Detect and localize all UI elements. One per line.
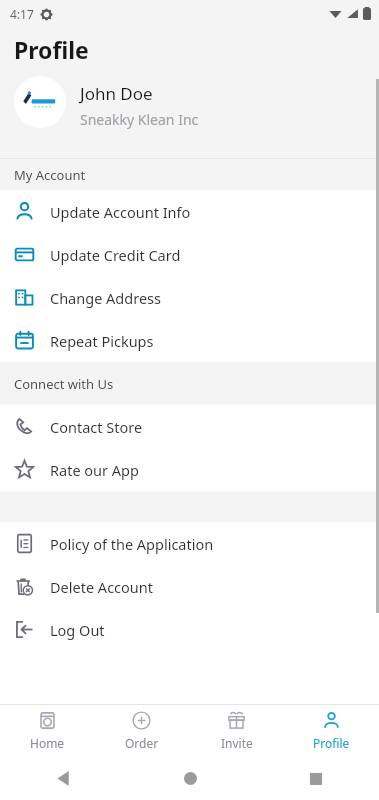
button[interactable]: Invite (189, 705, 284, 757)
button[interactable]: Recents (253, 773, 379, 785)
button[interactable]: Update Credit Card (0, 233, 379, 276)
button[interactable]: Policy of the Application (0, 522, 379, 565)
staticText: Home (30, 735, 65, 751)
button[interactable]: Update Account Info (0, 190, 379, 233)
button[interactable]: Back (0, 771, 127, 786)
staticText: Profile (14, 34, 89, 65)
staticText: Profile (313, 735, 350, 751)
staticText: Rate our App (50, 460, 139, 480)
staticText: Change Address (50, 288, 161, 308)
staticText: Contact Store (50, 417, 143, 437)
staticText: Delete Account (50, 577, 153, 597)
button[interactable]: Rate our App (0, 448, 379, 491)
staticText: Repeat Pickups (50, 331, 154, 351)
button[interactable]: Home (127, 772, 253, 785)
staticText: 4:17 (10, 6, 34, 22)
staticText: Update Account Info (50, 202, 191, 222)
staticText: Sneakky Klean Inc (80, 110, 199, 129)
button[interactable]: Change Address (0, 276, 379, 319)
button[interactable]: Profile (284, 705, 379, 757)
button[interactable]: Order (94, 705, 189, 757)
button[interactable]: Contact Store (0, 405, 379, 448)
staticText: Update Credit Card (50, 245, 181, 265)
staticText: John Doe (80, 82, 153, 105)
button[interactable]: Repeat Pickups (0, 319, 379, 362)
staticText: My Account (14, 166, 86, 184)
staticText: Connect with Us (14, 375, 114, 393)
button[interactable]: Home (0, 705, 94, 757)
staticText: Invite (221, 735, 253, 751)
staticText: Log Out (50, 620, 105, 640)
button[interactable]: Delete Account (0, 565, 379, 608)
button[interactable]: Log Out (0, 608, 379, 651)
staticText: Policy of the Application (50, 534, 214, 554)
staticText: Order (125, 735, 159, 751)
